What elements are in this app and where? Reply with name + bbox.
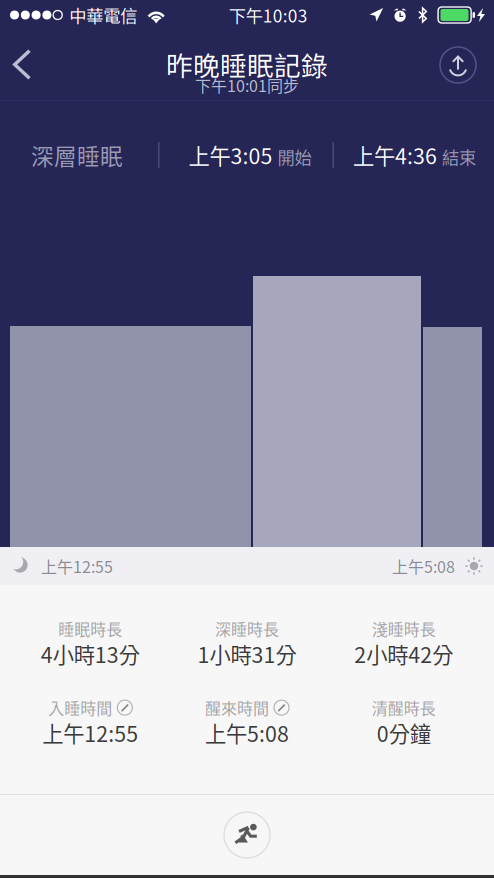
staticText: 4小時13分	[41, 638, 140, 669]
staticText: 清醒時長	[372, 696, 436, 719]
staticText: 深睡時長	[215, 617, 279, 640]
staticText: 開始	[277, 144, 311, 169]
staticText: 上午12:55	[42, 717, 138, 748]
button[interactable]: Activity	[224, 812, 270, 858]
staticText: 上午5:08	[205, 717, 289, 748]
staticText: 結束	[442, 144, 476, 169]
staticText: 2小時42分	[354, 638, 453, 669]
button[interactable]: Back	[0, 30, 55, 100]
staticText: 上午5:08	[392, 554, 455, 578]
staticText: 昨晚睡眠記錄	[166, 45, 328, 83]
staticText: 上午3:05	[188, 140, 272, 170]
button[interactable]: Sync	[416, 31, 494, 99]
staticText: 0分鐘	[377, 717, 431, 748]
staticText: 上午4:36	[353, 140, 437, 170]
staticText: 深層睡眠	[31, 139, 123, 171]
staticText: 睡眠時長	[58, 617, 122, 640]
staticText: 中華電信	[69, 2, 137, 28]
staticText: 醒來時間	[205, 696, 269, 719]
staticText: 上午12:55	[41, 554, 113, 578]
staticText: 淺睡時長	[372, 617, 436, 640]
staticText: 1小時31分	[197, 638, 296, 669]
staticText: 下午10:03	[229, 2, 308, 28]
staticText: 入睡時間	[48, 696, 112, 719]
staticText: 下午10:01同步	[195, 73, 299, 97]
